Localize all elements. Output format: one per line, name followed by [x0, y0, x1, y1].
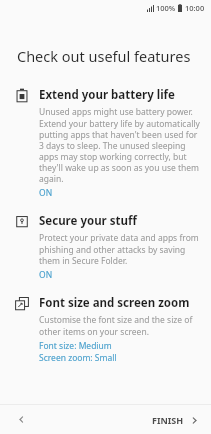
staticText: 10:00	[185, 3, 205, 13]
staticText: Customise the font size and the size of …	[39, 314, 201, 338]
staticText: Secure your stuff	[39, 213, 137, 229]
staticText: Font size and screen zoom	[39, 295, 190, 311]
staticText: Check out useful features	[17, 46, 191, 66]
staticText: Protect your private data and apps from …	[39, 232, 201, 267]
staticText: FINISH	[152, 414, 184, 426]
button[interactable]: Secure your stuff	[0, 213, 211, 281]
button[interactable]: ON	[39, 269, 53, 281]
button[interactable]: Font size and screen zoom	[0, 295, 211, 364]
button[interactable]: Back	[0, 405, 42, 434]
button[interactable]: ON	[39, 187, 53, 199]
button[interactable]: Font size: Medium	[39, 340, 112, 352]
staticText: Extend your battery life	[39, 87, 175, 103]
button[interactable]: FINISH	[142, 408, 211, 432]
staticText: 100%	[156, 3, 176, 13]
button[interactable]: Screen zoom: Small	[39, 352, 117, 364]
button[interactable]: Extend your battery life	[0, 87, 211, 199]
staticText: Unused apps might use battery power. Ext…	[39, 106, 201, 185]
